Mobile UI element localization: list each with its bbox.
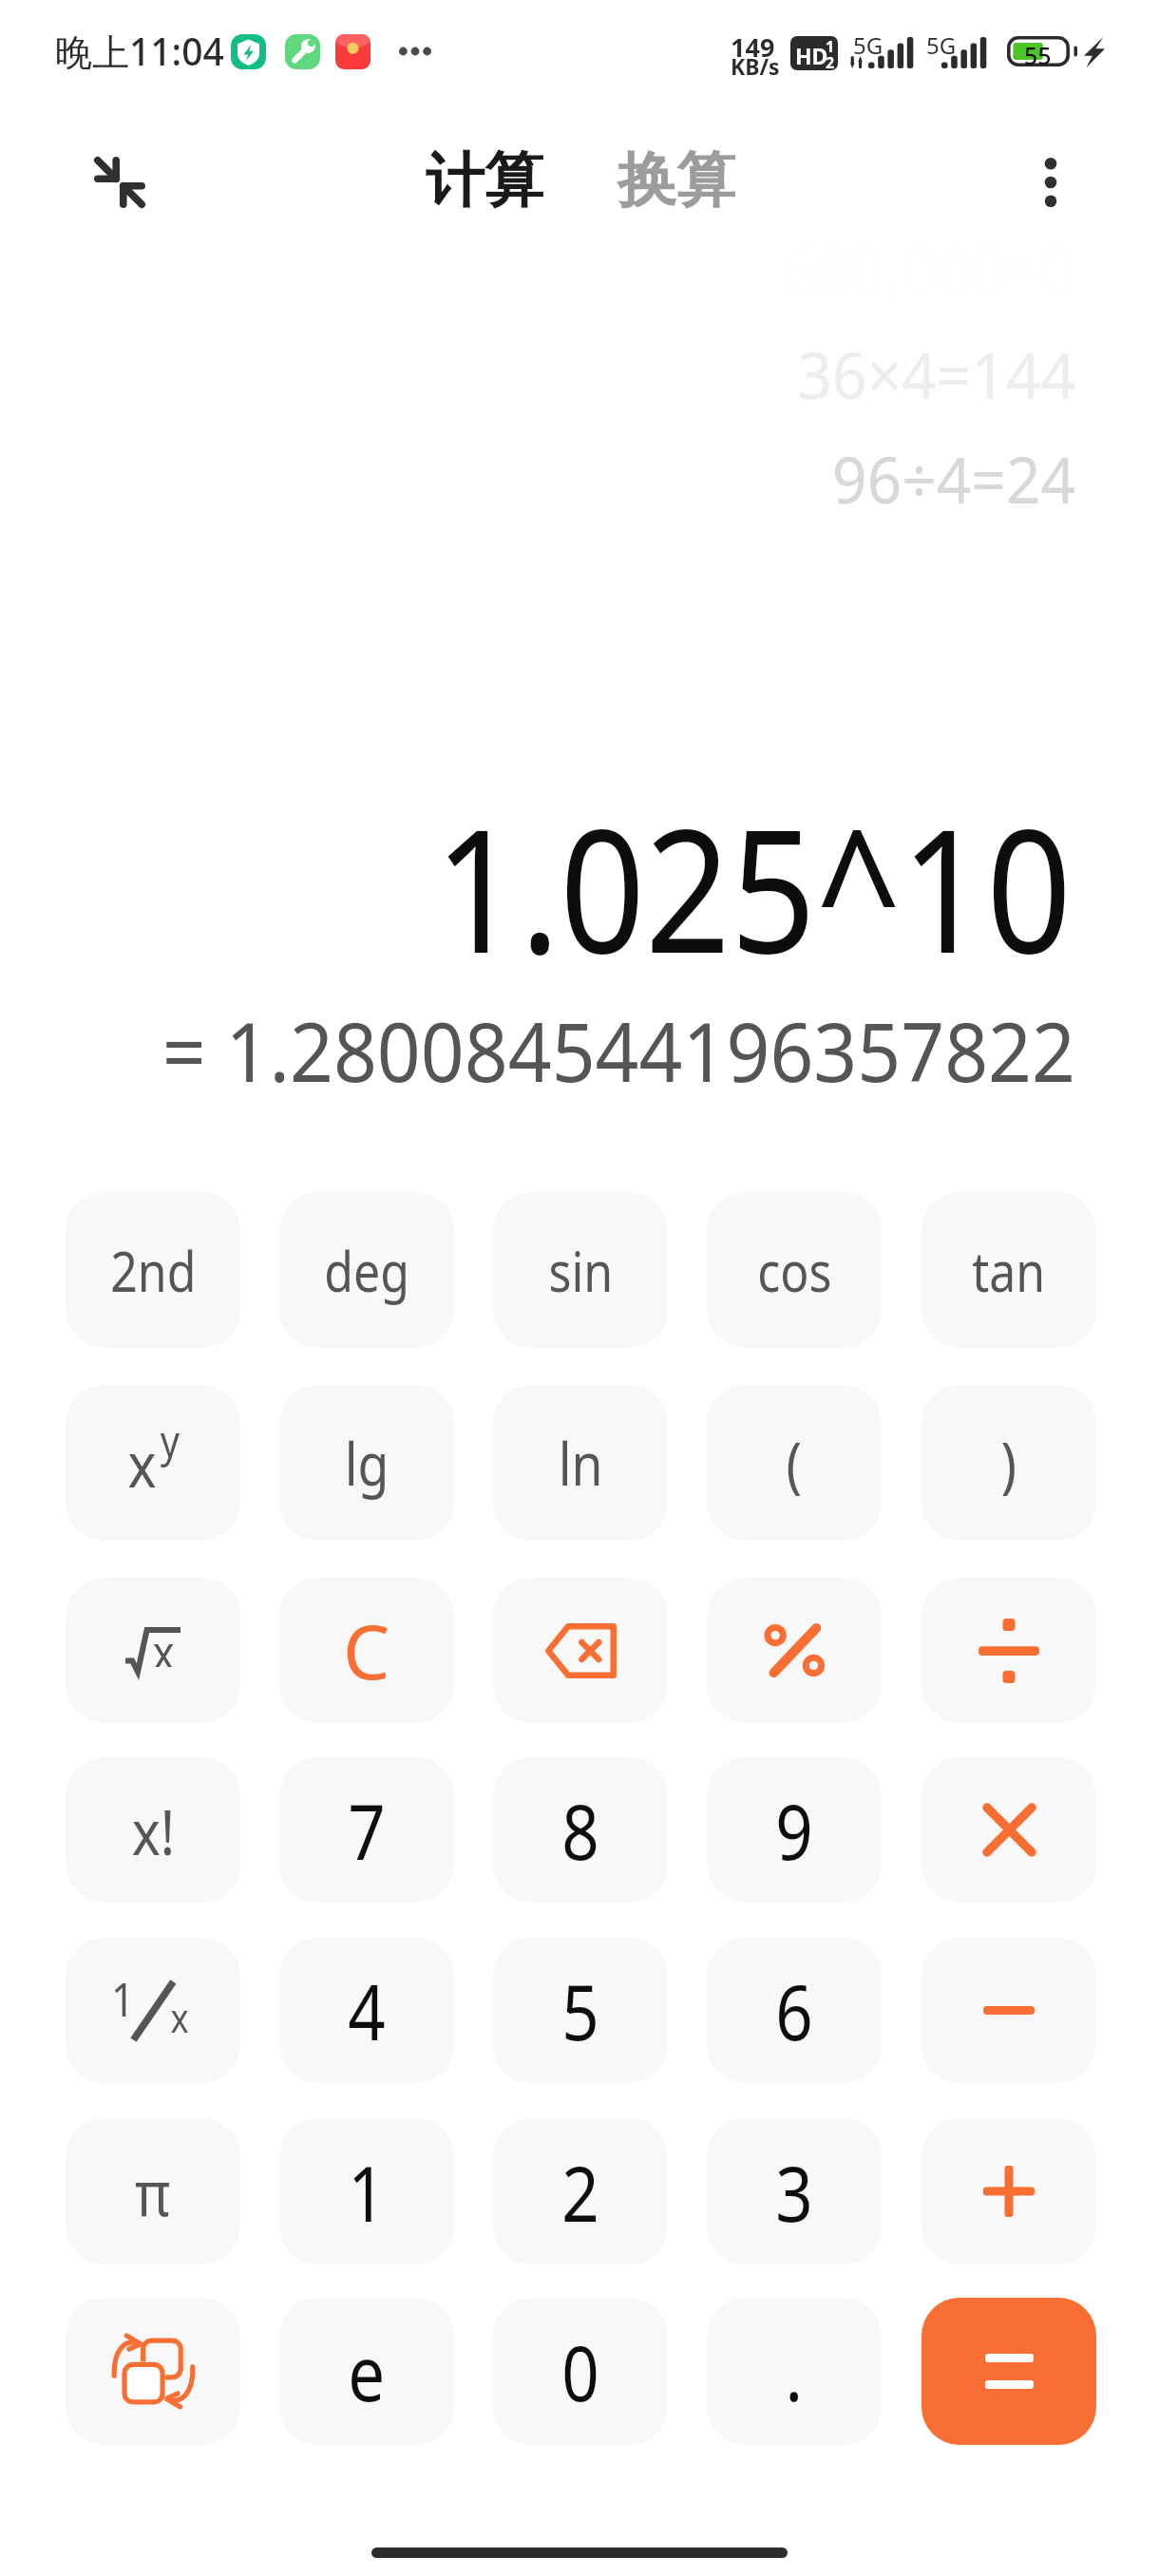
staticText: ) [1001,1422,1017,1505]
button[interactable]: 计算 [418,138,551,223]
staticText: . [785,2320,803,2423]
staticText: 5 [562,1959,599,2062]
button[interactable]: Plus [921,2118,1096,2264]
staticText: y [160,1411,180,1470]
staticText: 1 [826,36,835,57]
button[interactable]: one over x [66,1938,240,2083]
staticText: 6 [775,1959,813,2062]
button[interactable]: e [279,2298,454,2445]
staticText: 8 [562,1778,599,1882]
staticText: 3 [775,2140,813,2244]
staticText: e [348,2320,386,2423]
button[interactable]: π [66,2118,240,2264]
button[interactable]: 2 [493,2118,668,2264]
staticText: π [135,2149,171,2234]
button[interactable]: . [707,2298,882,2445]
button[interactable]: deg [279,1192,454,1348]
button[interactable]: 5 [493,1938,668,2083]
staticText: 2nd [110,1233,196,1308]
staticText: tan [972,1233,1046,1308]
button[interactable]: ln [493,1385,668,1541]
staticText: 7 [348,1778,386,1882]
button[interactable]: 8 [493,1757,668,1903]
staticText: ln [558,1423,603,1503]
staticText: 晚上11:04 [55,26,224,76]
staticText: = 1.280084544196357822 [59,995,1075,1106]
staticText: sin [549,1233,613,1308]
button[interactable]: cos [707,1192,882,1348]
staticText: C [343,1601,390,1701]
staticText: 9 [775,1778,813,1882]
button[interactable]: ) [921,1385,1096,1541]
button[interactable]: Clear [279,1578,454,1723]
button[interactable]: 换算 [610,138,743,223]
button[interactable]: More options [1007,139,1094,226]
staticText: 5G [926,29,957,61]
staticText: 换算 [617,143,735,218]
button[interactable]: Equals [921,2298,1096,2445]
button[interactable]: Unit converter [66,2298,240,2445]
staticText: x [153,1619,175,1667]
staticText: cos [757,1233,832,1308]
staticText: 2 [826,52,835,70]
staticText: 2 [562,2140,599,2244]
staticText: HD [795,41,828,70]
button[interactable]: 0 [493,2298,668,2445]
button[interactable]: x! [66,1757,240,1903]
button[interactable]: lg [279,1385,454,1541]
staticText: 5G [853,29,883,61]
staticText: 1 [111,1966,135,2027]
staticText: deg [324,1233,410,1308]
staticText: lg [345,1423,390,1503]
staticText: x [128,1420,156,1506]
button[interactable]: Square root [66,1578,240,1723]
staticText: 36×4=144 [65,330,1075,418]
staticText: 55 [1024,39,1052,71]
button[interactable]: ( [707,1385,882,1541]
button[interactable]: x to the power y [66,1385,240,1541]
button[interactable]: sin [493,1192,668,1348]
staticText: 0 [562,2320,599,2423]
button[interactable]: 1 [279,2118,454,2264]
button[interactable]: Backspace [493,1578,668,1723]
button[interactable]: Divide [921,1578,1096,1723]
button[interactable]: tan [921,1192,1096,1348]
button[interactable]: Percent [707,1578,882,1723]
staticText: 1 [348,2140,386,2244]
button[interactable]: Multiply [921,1757,1096,1903]
staticText: 1.025^10 [137,770,1072,1003]
button[interactable]: Collapse [68,131,171,234]
button[interactable]: Minus [921,1938,1096,2083]
staticText: 4 [348,1959,386,2062]
button[interactable]: 7 [279,1757,454,1903]
button[interactable]: 3 [707,2118,882,2264]
staticText: 149 [731,29,775,65]
button[interactable]: 9 [707,1757,882,1903]
staticText: KB/s [731,51,780,81]
staticText: x! [132,1788,175,1873]
button[interactable]: 4 [279,1938,454,2083]
staticText: 96÷4=24 [65,434,1075,522]
staticText: 计算 [426,143,543,218]
button[interactable]: 6 [707,1938,882,2083]
button[interactable]: 2nd [66,1192,240,1348]
staticText: x [171,1990,189,2044]
staticText: ( [786,1422,802,1505]
